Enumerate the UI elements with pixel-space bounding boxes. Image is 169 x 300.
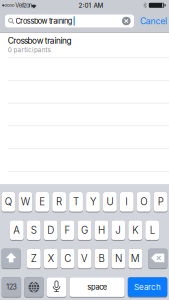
staticText: S [31,224,37,236]
staticText: Z [31,253,37,264]
button[interactable] [5,15,134,27]
staticText: G [81,224,88,236]
button[interactable]: Crossbow training [0,33,169,57]
staticText: D [47,224,54,236]
staticText: U [106,196,113,208]
staticText: N [115,253,122,264]
button[interactable] [2,249,21,269]
staticText: P [158,196,164,208]
staticText: Search [134,282,161,292]
staticText: space [87,282,107,291]
staticText: I [125,196,128,208]
button[interactable]: L [145,220,159,241]
button[interactable]: D [44,220,57,241]
button[interactable]: H [95,220,108,241]
button[interactable]: E [35,192,49,212]
staticText: L [150,224,155,236]
button[interactable]: S [27,220,41,241]
button[interactable] [148,249,167,269]
staticText: H [98,224,105,236]
staticText: W [21,196,30,208]
button[interactable] [47,277,66,298]
staticText: J [115,224,121,236]
staticText: T [73,196,79,208]
button[interactable]: W [18,192,32,212]
button[interactable]: X [44,249,58,269]
button[interactable]: B [95,249,108,269]
staticText: E [39,196,45,208]
staticText: Y [90,196,96,208]
staticText: R [56,196,62,208]
button[interactable]: C [61,249,74,269]
staticText: F [65,224,71,236]
staticText: Crossbow training [8,36,72,46]
staticText: Crossbow training [16,17,72,25]
button[interactable]: N [112,249,125,269]
staticText: C [64,253,71,264]
staticText: 0 participants [8,46,50,54]
button[interactable]: Q [1,192,15,212]
button[interactable]: R [52,192,66,212]
staticText: Verizon [15,2,32,9]
button[interactable]: T [69,192,83,212]
staticText: M [131,253,140,264]
button[interactable]: 123 [2,277,21,298]
button[interactable]: space [69,277,125,298]
staticText: 123 [6,283,17,291]
staticText: X [48,253,54,264]
button[interactable]: P [154,192,167,212]
staticText: V [81,253,88,264]
button[interactable]: M [128,249,142,269]
button[interactable]: O [137,192,151,212]
button[interactable]: U [103,192,117,212]
staticText: 2:01 AM [78,2,103,9]
staticText: A [13,224,20,236]
button[interactable]: V [78,249,91,269]
staticText: K [132,224,138,236]
button[interactable]: G [78,220,91,241]
button[interactable]: J [111,220,125,241]
button[interactable]: A [10,220,24,241]
button[interactable]: K [128,220,142,241]
staticText: B [98,253,104,264]
button[interactable] [24,277,44,298]
button[interactable] [122,17,131,25]
staticText: Q [5,196,12,208]
button[interactable]: Z [27,249,41,269]
button[interactable]: I [120,192,134,212]
staticText: Cancel [140,16,167,26]
staticText: O [140,196,147,208]
button[interactable]: F [61,220,74,241]
button[interactable]: Cancel [140,16,169,26]
button[interactable]: Y [86,192,100,212]
button[interactable]: Search [128,277,167,298]
